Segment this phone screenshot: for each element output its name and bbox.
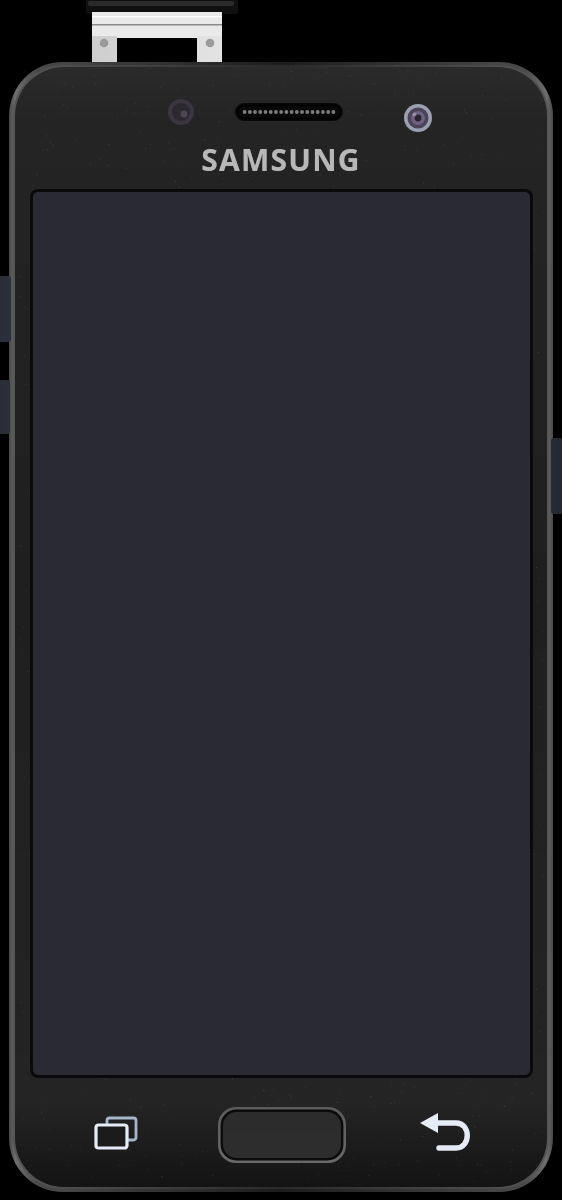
- staticText: SAMSUNG: [201, 139, 361, 180]
- button[interactable]: Back: [414, 1104, 478, 1166]
- button[interactable]: Home: [218, 1107, 346, 1163]
- button[interactable]: Recent apps: [86, 1104, 148, 1166]
